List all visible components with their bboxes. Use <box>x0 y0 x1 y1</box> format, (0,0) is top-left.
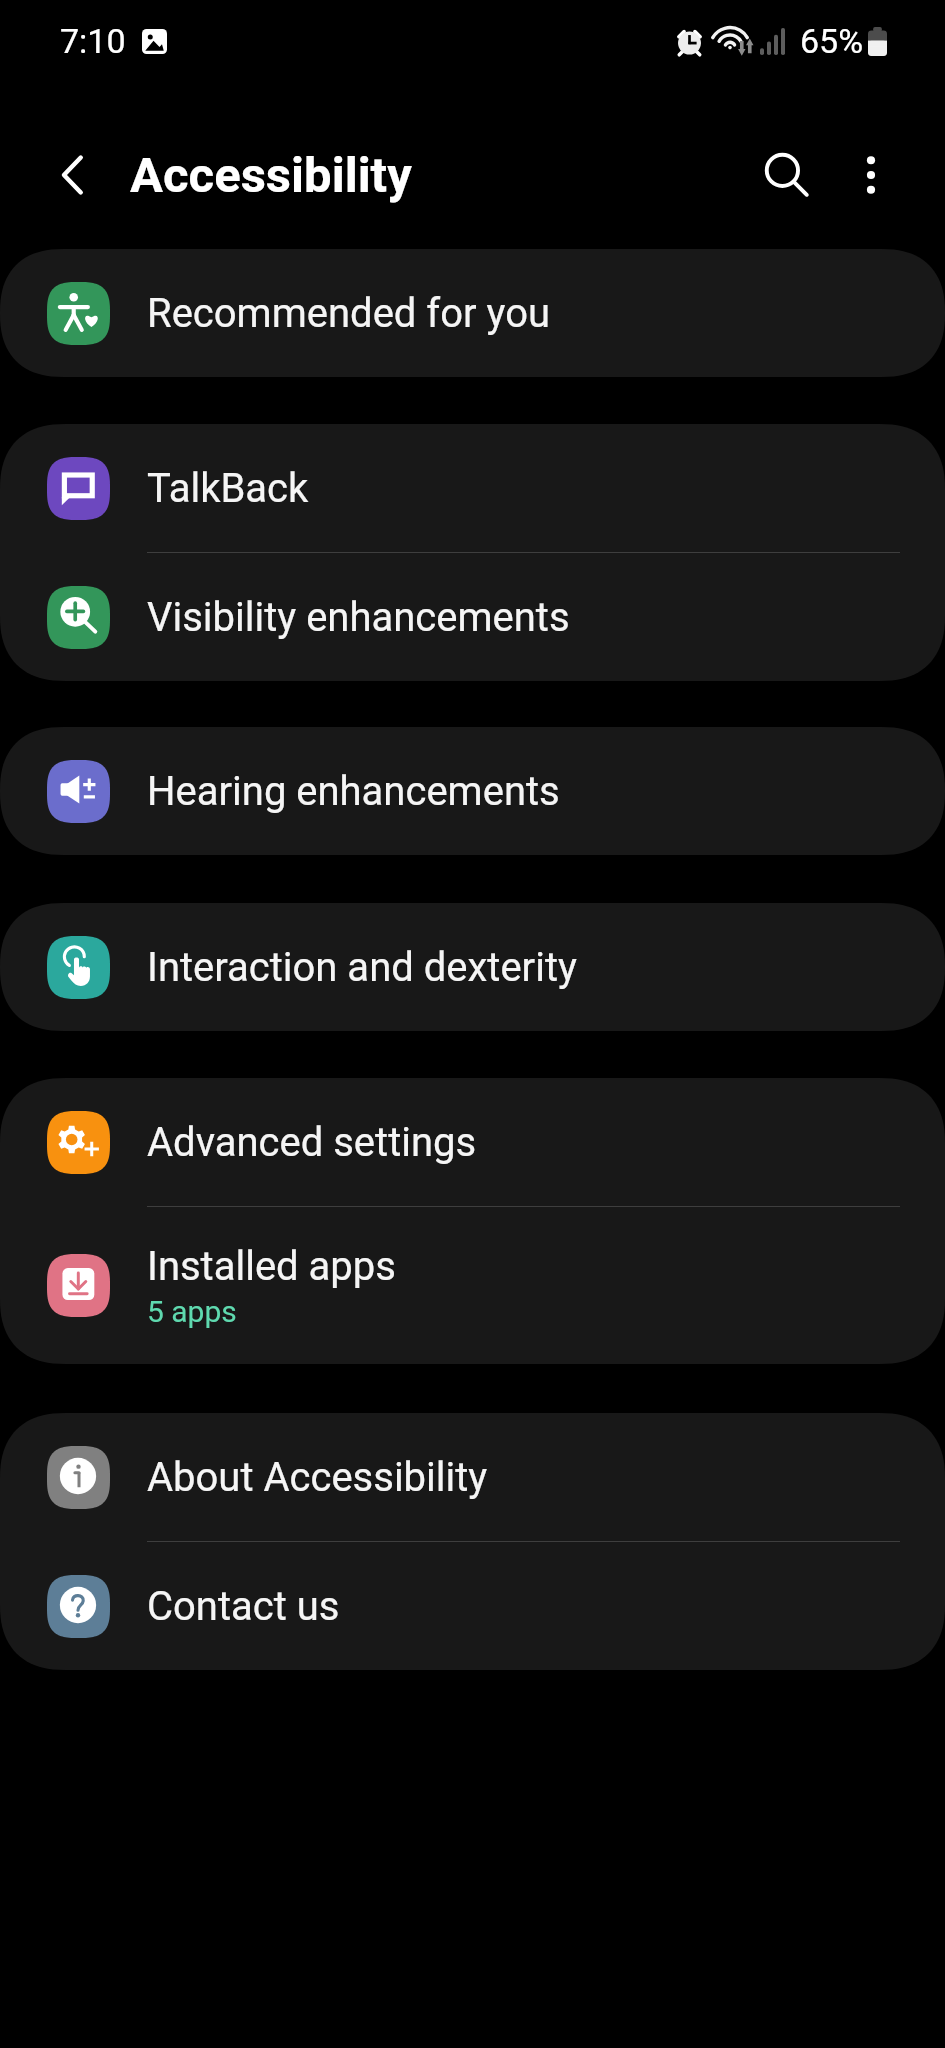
staticText: Interaction and dexterity <box>147 944 577 991</box>
staticText: Installed apps <box>147 1243 396 1290</box>
button[interactable]: Visibility enhancements <box>0 553 945 681</box>
staticText: Contact us <box>147 1583 340 1630</box>
button[interactable]: TalkBack <box>0 424 945 552</box>
staticText: 5 apps <box>147 1294 237 1329</box>
staticText: 65% <box>800 21 864 61</box>
button[interactable]: Navigate up <box>44 144 106 206</box>
staticText: 7:10 <box>60 21 126 61</box>
staticText: Visibility enhancements <box>147 594 570 641</box>
staticText: Hearing enhancements <box>147 768 560 815</box>
button[interactable]: Hearing enhancements <box>0 727 945 855</box>
button[interactable]: More options <box>835 139 907 211</box>
button[interactable]: Contact us <box>0 1542 945 1670</box>
button[interactable]: Interaction and dexterity <box>0 903 945 1031</box>
button[interactable]: Installed apps <box>0 1207 945 1364</box>
button[interactable]: Advanced settings <box>0 1078 945 1206</box>
staticText: About Accessibility <box>147 1454 488 1501</box>
staticText: Recommended for you <box>147 290 551 337</box>
staticText: Advanced settings <box>147 1119 477 1166</box>
staticText: Accessibility <box>130 147 412 204</box>
button[interactable]: Search <box>751 139 823 211</box>
staticText: TalkBack <box>147 465 309 512</box>
button[interactable]: About Accessibility <box>0 1413 945 1541</box>
button[interactable]: Recommended for you <box>0 249 945 377</box>
